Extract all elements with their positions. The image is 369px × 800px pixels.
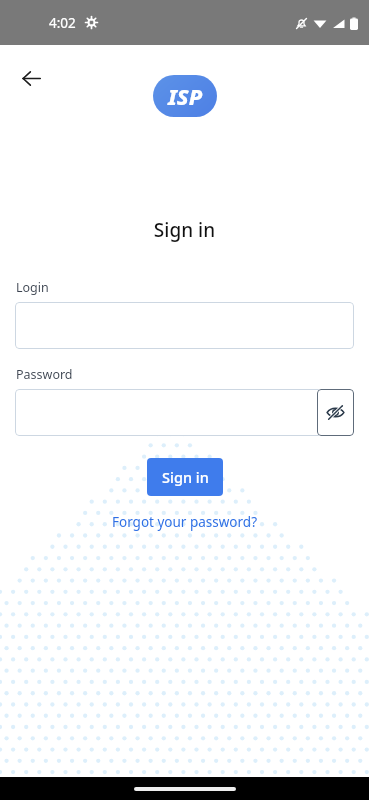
staticText: Sign in [162,467,209,487]
button[interactable]: Password field [15,389,354,436]
button[interactable]: Login field [15,302,354,349]
staticText: Forgot your password? [112,513,258,531]
staticText: Password [16,366,73,383]
staticText: 4:02 [49,14,76,32]
staticText: ISP [168,81,203,111]
staticText: Login [16,279,49,296]
button[interactable]: Sign in [147,458,223,496]
button[interactable]: Show password [317,389,354,436]
staticText: Sign in [0,217,369,243]
button[interactable]: Forgot your password? [108,509,262,535]
button[interactable]: Back [12,59,50,97]
